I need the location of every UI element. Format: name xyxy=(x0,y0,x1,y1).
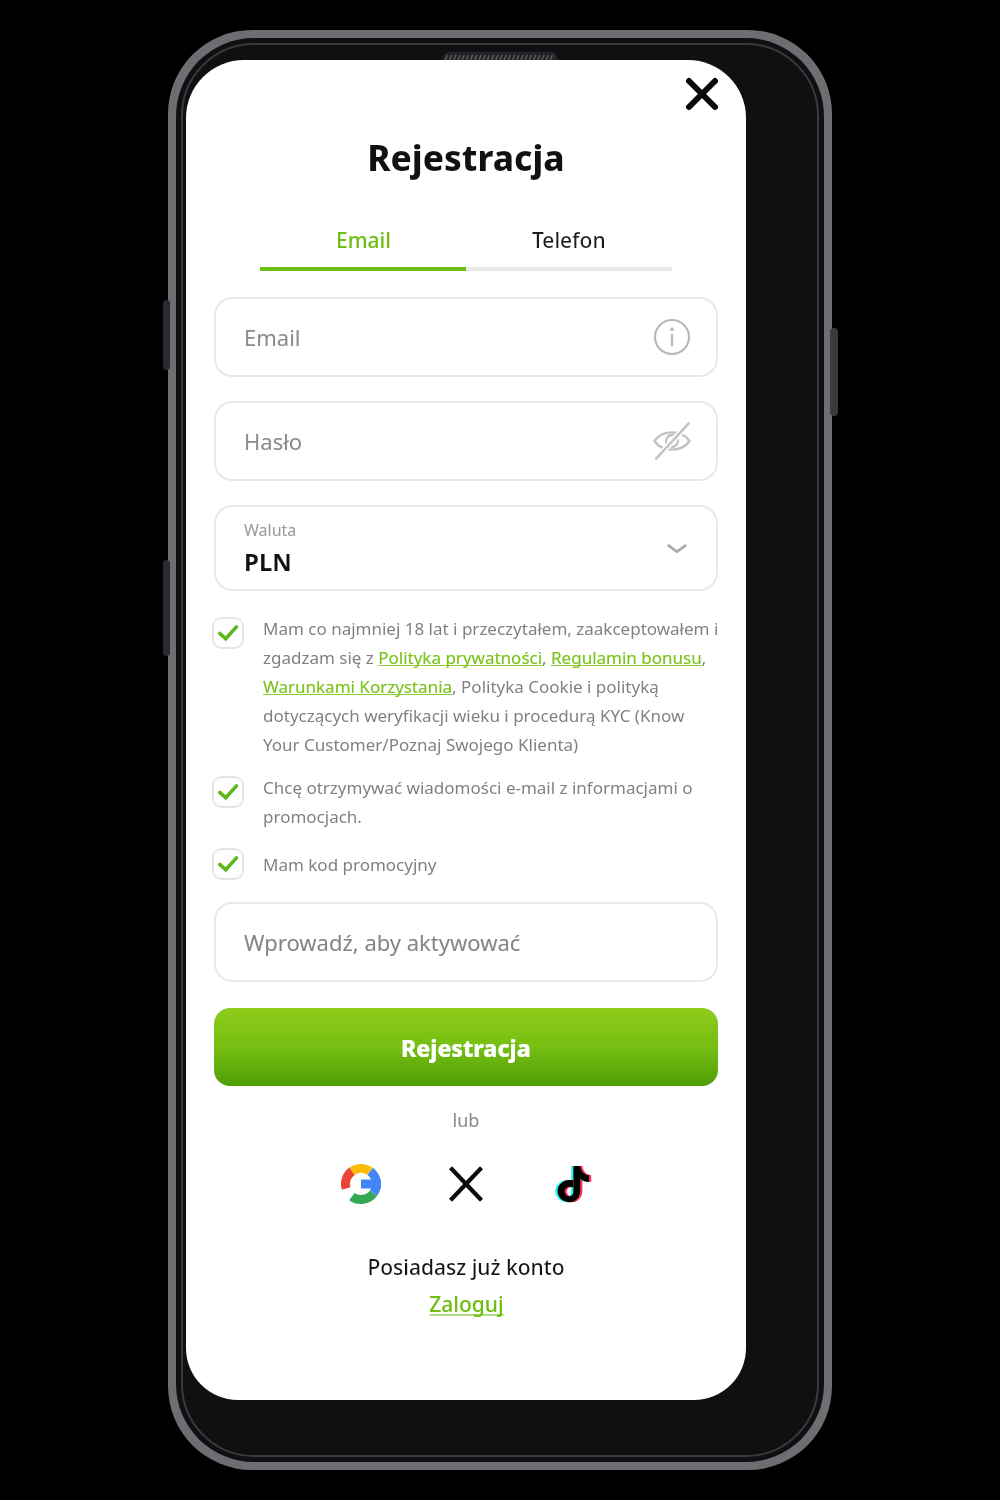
staticText: PLN xyxy=(244,545,292,578)
staticText: Email xyxy=(336,226,391,255)
button[interactable]: Email xyxy=(260,226,466,255)
button[interactable]: Wybierz walutę xyxy=(662,533,692,563)
staticText: Waluta xyxy=(244,519,297,541)
button[interactable]: Pokaż hasło xyxy=(650,419,694,463)
button[interactable]: Rejestracja xyxy=(214,1008,718,1086)
staticText: Rejestracja xyxy=(186,134,746,182)
button[interactable]: Email xyxy=(214,297,718,377)
button[interactable]: Chcę otrzymywać wiadomości e-mail z info… xyxy=(212,776,722,828)
staticText: Mam kod promocyjny xyxy=(263,853,437,876)
staticText: Zaloguj xyxy=(429,1290,504,1319)
button[interactable]: Waluta xyxy=(214,505,718,591)
button[interactable]: Mam kod promocyjny xyxy=(212,848,722,880)
button[interactable]: Google xyxy=(330,1153,392,1215)
staticText: Wprowadź, aby aktywować xyxy=(244,927,521,957)
button[interactable]: Mam co najmniej 18 lat i przeczytałem, z… xyxy=(212,617,722,756)
staticText: Email xyxy=(244,322,301,352)
button[interactable]: TikTok xyxy=(540,1153,602,1215)
staticText: Mam co najmniej 18 lat i przeczytałem, z… xyxy=(263,617,722,756)
button[interactable]: Hasło xyxy=(214,401,718,481)
button[interactable]: Zaloguj xyxy=(186,1290,746,1319)
button[interactable]: Telefon xyxy=(466,226,672,255)
staticText: Telefon xyxy=(532,226,606,255)
staticText: lub xyxy=(186,1108,746,1133)
button[interactable]: Wprowadź, aby aktywować xyxy=(214,902,718,982)
staticText: Rejestracja xyxy=(401,1032,531,1063)
button[interactable]: Informacja xyxy=(652,317,692,357)
button[interactable]: X xyxy=(435,1153,497,1215)
staticText: Hasło xyxy=(244,426,303,456)
button[interactable]: Zamknij xyxy=(676,68,728,120)
staticText: Chcę otrzymywać wiadomości e-mail z info… xyxy=(263,776,722,828)
staticText: Posiadasz już konto xyxy=(186,1253,746,1282)
